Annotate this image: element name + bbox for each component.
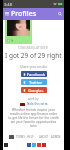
staticText: Nolo this extra [27, 102, 48, 106]
staticText: work by [28, 97, 39, 101]
staticText: TERMS [16, 135, 25, 139]
button[interactable]: Facebook [21, 71, 47, 77]
staticText: ABOUT [39, 135, 49, 139]
staticText: ADMIN [51, 135, 61, 139]
staticText: CONGRATULATIONS! [18, 46, 49, 50]
button[interactable]: Play [11, 39, 14, 42]
button[interactable]: Menu [3, 8, 11, 20]
staticText: Whether friends inspire your results onl… [8, 108, 59, 128]
button[interactable]: Logo [9, 135, 14, 139]
button[interactable]: Photo [6, 38, 10, 42]
button[interactable]: Search [56, 8, 64, 20]
staticText: I got 29 of 29 right [5, 51, 62, 60]
staticText: HELP [27, 135, 34, 139]
button[interactable]: Twitter [21, 79, 47, 85]
staticText: Facebook [27, 72, 45, 77]
staticText: Profiles [11, 9, 37, 19]
staticText: Twitter [29, 80, 43, 85]
staticText: 3:48 [4, 2, 12, 7]
button[interactable]: Google+ [21, 87, 47, 93]
staticText: Share your results [20, 65, 48, 69]
staticText: Google+ [28, 88, 44, 93]
